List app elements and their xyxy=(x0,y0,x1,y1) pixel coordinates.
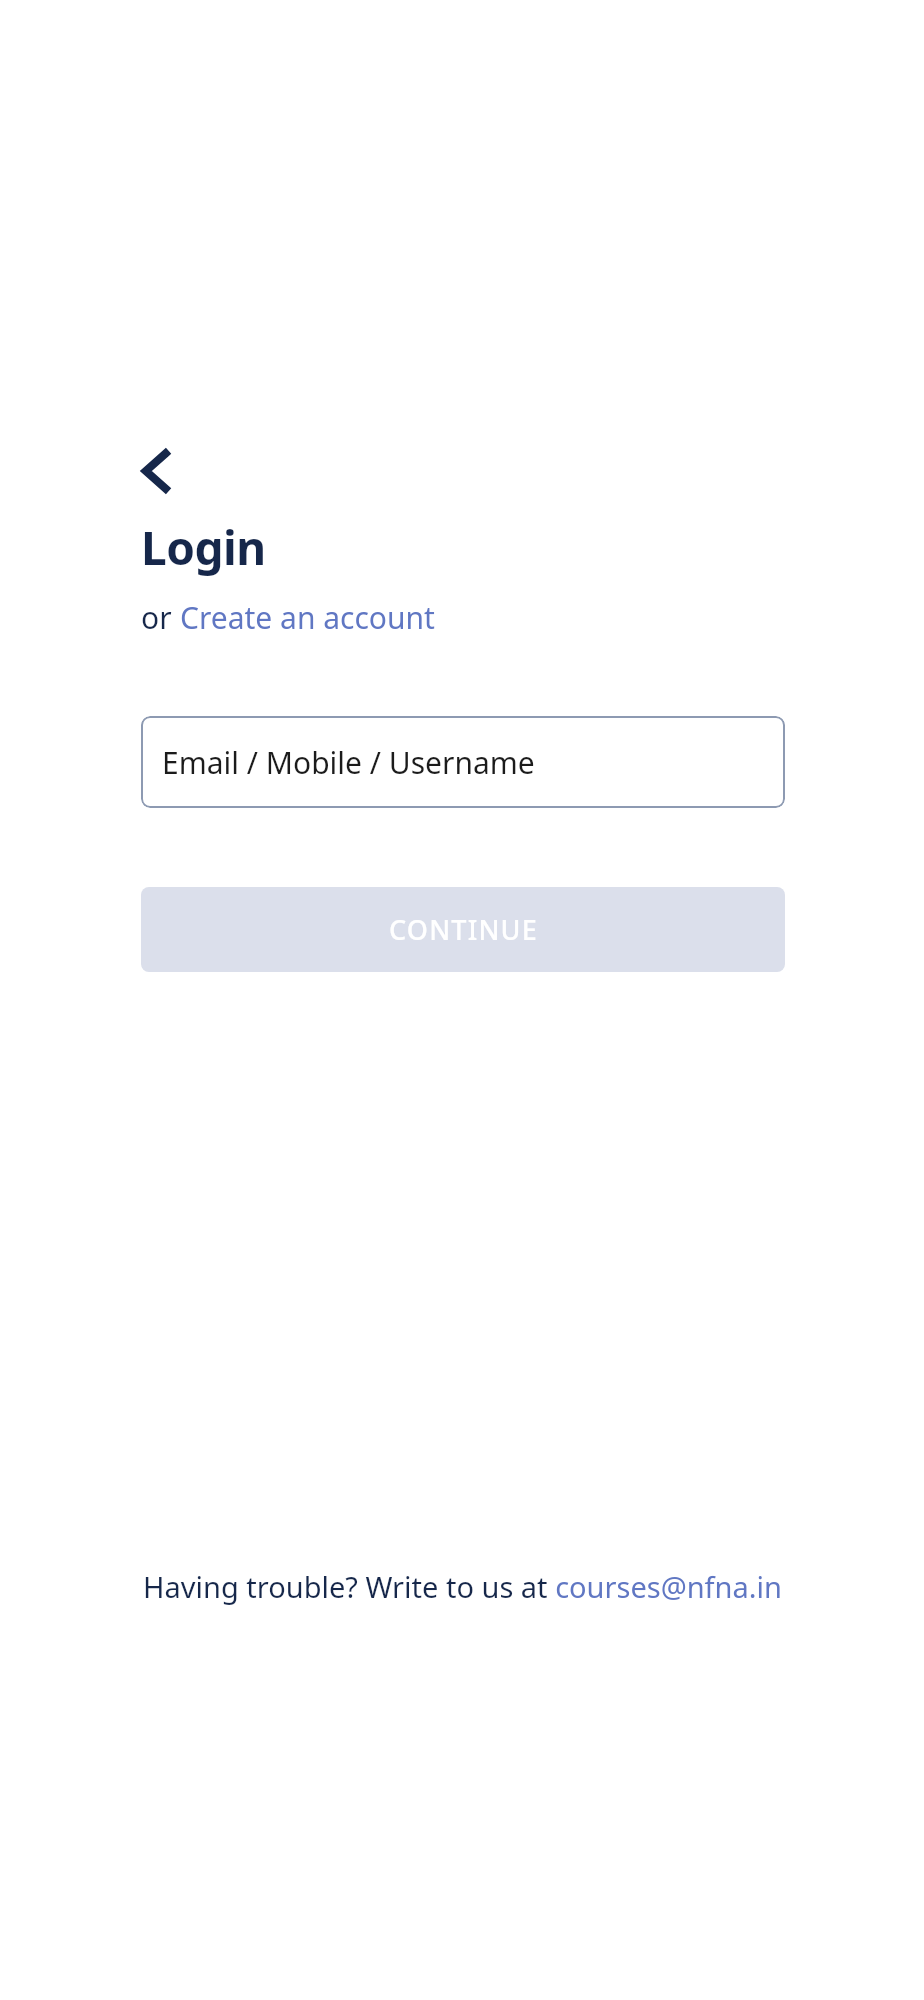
staticText: or xyxy=(141,597,180,638)
button[interactable]: Email / Mobile / Username xyxy=(141,716,785,808)
staticText: Create an account xyxy=(180,597,435,638)
button[interactable]: CONTINUE xyxy=(141,887,785,972)
staticText: Email / Mobile / Username xyxy=(162,742,535,783)
button[interactable]: Having trouble? Write to us at courses@n… xyxy=(143,1567,782,1606)
button[interactable]: Back xyxy=(141,440,197,502)
staticText: CONTINUE xyxy=(389,911,538,948)
button[interactable]: Create an account xyxy=(180,597,435,638)
staticText: Having trouble? Write to us at courses@n… xyxy=(143,1567,782,1606)
staticText: Login xyxy=(141,516,266,579)
